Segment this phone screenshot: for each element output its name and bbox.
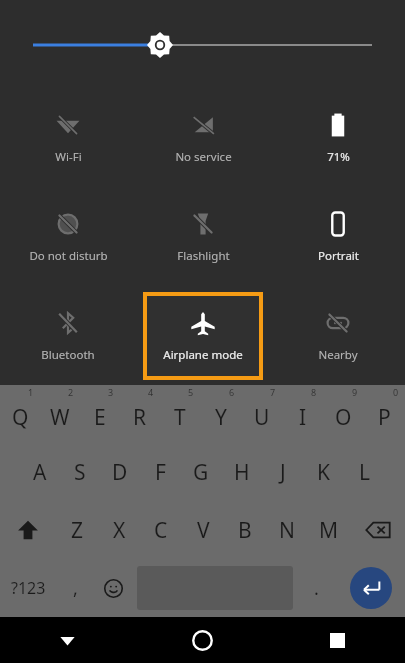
button[interactable]: 9 — [323, 385, 364, 443]
button[interactable]: 6 — [200, 385, 241, 443]
button[interactable]: G — [180, 443, 221, 501]
staticText: 0 — [393, 386, 399, 398]
button[interactable]: 71% — [278, 94, 398, 182]
button[interactable]: 2 — [40, 385, 80, 443]
button[interactable]: Wi-Fi — [8, 94, 128, 182]
staticText: R — [133, 403, 147, 432]
staticText: Airplane mode — [163, 347, 243, 363]
staticText: J — [280, 458, 286, 487]
staticText: W — [50, 403, 70, 432]
button[interactable]: J — [262, 443, 303, 501]
staticText: Q — [12, 403, 29, 432]
button[interactable]: S — [60, 443, 100, 501]
button[interactable]: B — [224, 501, 266, 559]
button[interactable]: D — [100, 443, 140, 501]
staticText: 7 — [270, 386, 276, 398]
staticText: F — [155, 458, 166, 487]
staticText: 6 — [229, 386, 235, 398]
button[interactable]: M — [308, 501, 350, 559]
staticText: G — [193, 458, 209, 487]
staticText: Portrait — [318, 248, 359, 264]
staticText: 5 — [188, 386, 194, 398]
button[interactable]: K — [303, 443, 344, 501]
staticText: Z — [71, 516, 84, 545]
button[interactable]: 3 — [80, 385, 120, 443]
button[interactable]: 5 — [160, 385, 200, 443]
staticText: 2 — [68, 386, 74, 398]
button[interactable]: 7 — [241, 385, 282, 443]
staticText: 9 — [352, 386, 358, 398]
staticText: , — [73, 576, 78, 601]
button[interactable]: 8 — [282, 385, 323, 443]
button[interactable]: Emoji — [93, 559, 134, 617]
button[interactable]: V — [182, 501, 224, 559]
staticText: E — [94, 403, 106, 432]
button[interactable]: 1 — [0, 385, 40, 443]
button[interactable]: 4 — [120, 385, 160, 443]
staticText: L — [359, 458, 371, 487]
button[interactable]: Flashlight — [143, 193, 263, 281]
staticText: . — [314, 576, 319, 601]
button[interactable]: Portrait — [278, 193, 398, 281]
button[interactable]: ?123 — [0, 559, 57, 617]
staticText: Y — [215, 403, 227, 432]
staticText: 71% — [327, 149, 350, 165]
button[interactable]: Brightness — [0, 0, 405, 92]
staticText: Flashlight — [177, 248, 230, 264]
button[interactable]: X — [98, 501, 140, 559]
button[interactable]: Home — [135, 617, 270, 663]
button[interactable]: C — [140, 501, 182, 559]
staticText: Nearby — [318, 347, 358, 363]
staticText: B — [238, 516, 252, 545]
staticText: Do not disturb — [29, 248, 108, 264]
staticText: 8 — [311, 386, 317, 398]
button[interactable]: Do not disturb — [8, 193, 128, 281]
staticText: 1 — [28, 386, 34, 398]
button[interactable]: F — [140, 443, 180, 501]
button[interactable]: Bluetooth — [8, 292, 128, 380]
button[interactable]: L — [344, 443, 385, 501]
staticText: I — [299, 403, 307, 432]
staticText: H — [234, 458, 250, 487]
staticText: N — [279, 516, 295, 545]
button[interactable]: , — [57, 559, 93, 617]
staticText: 3 — [108, 386, 114, 398]
button[interactable]: 0 — [364, 385, 405, 443]
staticText: M — [319, 516, 339, 545]
staticText: O — [335, 403, 352, 432]
staticText: T — [174, 403, 186, 432]
staticText: Wi-Fi — [55, 149, 82, 165]
button[interactable]: Shift — [0, 501, 56, 559]
staticText: S — [74, 458, 86, 487]
staticText: C — [154, 516, 168, 545]
staticText: Bluetooth — [41, 347, 95, 363]
button[interactable]: Recents — [270, 617, 405, 663]
staticText: 4 — [148, 386, 154, 398]
button[interactable]: Nearby — [278, 292, 398, 380]
button[interactable]: Airplane mode — [147, 296, 259, 376]
button[interactable]: A — [20, 443, 60, 501]
button[interactable]: Z — [56, 501, 98, 559]
button[interactable]: H — [221, 443, 262, 501]
staticText: A — [33, 458, 47, 487]
staticText: D — [112, 458, 128, 487]
staticText: K — [317, 458, 330, 487]
staticText: ?123 — [11, 577, 46, 599]
staticText: X — [113, 516, 126, 545]
staticText: V — [197, 516, 210, 545]
staticText: No service — [175, 149, 232, 165]
staticText: P — [378, 403, 391, 432]
button[interactable]: Backspace — [350, 501, 405, 559]
button[interactable]: No service — [143, 94, 263, 182]
button[interactable]: Hide keyboard — [0, 617, 135, 663]
button[interactable]: Enter — [337, 559, 405, 617]
staticText: U — [254, 403, 270, 432]
button[interactable]: N — [266, 501, 308, 559]
